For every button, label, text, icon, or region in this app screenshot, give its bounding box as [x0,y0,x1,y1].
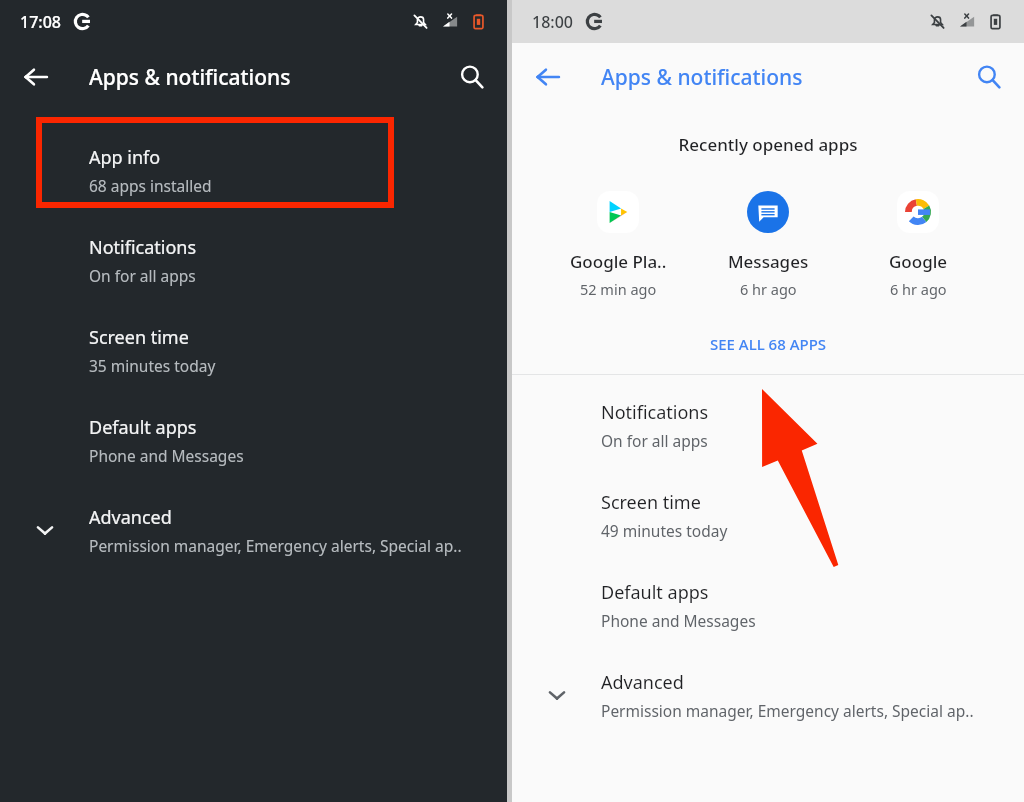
button[interactable]: Screen time [0,305,507,395]
staticText: 6 hr ago [740,279,797,299]
button[interactable]: Default apps [512,560,1024,650]
staticText: Screen time [89,325,189,350]
button[interactable]: Notifications [0,215,507,305]
staticText: App info [89,145,161,170]
staticText: Apps & notifications [89,63,291,92]
staticText: Default apps [601,580,709,605]
button[interactable]: Advanced [0,485,507,575]
button[interactable]: Google Pla.. [558,188,678,299]
staticText: Phone and Messages [601,610,756,631]
staticText: Permission manager, Emergency alerts, Sp… [89,535,462,556]
staticText: 52 min ago [580,279,657,299]
staticText: On for all apps [89,265,196,286]
staticText: Google Pla.. [570,250,667,273]
staticText: 49 minutes today [601,520,728,541]
staticText: 17:08 [20,11,61,33]
staticText: On for all apps [601,430,708,451]
button[interactable]: App info [0,125,507,215]
staticText: Google [889,250,948,273]
staticText: Advanced [601,670,684,695]
button[interactable]: Notifications [512,380,1024,470]
button[interactable]: Advanced [512,650,1024,740]
staticText: Notifications [601,400,709,425]
staticText: Permission manager, Emergency alerts, Sp… [601,700,974,721]
staticText: Screen time [601,490,701,515]
button[interactable]: Messages [708,188,828,299]
staticText: 68 apps installed [89,175,212,196]
staticText: Default apps [89,415,197,440]
staticText: Recently opened apps [512,133,1024,156]
button[interactable]: Google [858,188,978,299]
staticText: Apps & notifications [601,63,803,92]
staticText: Advanced [89,505,172,530]
button[interactable]: Default apps [0,395,507,485]
button[interactable]: Search [437,43,507,111]
button[interactable]: Screen time [512,470,1024,560]
staticText: Messages [728,250,809,273]
button[interactable]: Back [0,43,72,111]
staticText: SEE ALL 68 APPS [710,334,827,354]
staticText: Phone and Messages [89,445,244,466]
button[interactable]: Back [512,43,584,111]
staticText: 6 hr ago [890,279,947,299]
staticText: Notifications [89,235,197,260]
staticText: 18:00 [532,11,573,33]
staticText: 35 minutes today [89,355,216,376]
button[interactable]: SEE ALL 68 APPS [512,327,1024,361]
button[interactable]: Search [954,43,1024,111]
